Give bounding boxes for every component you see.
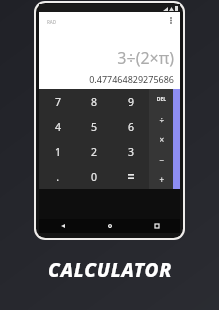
button[interactable]: Home [86, 219, 133, 233]
staticText: . [56, 170, 59, 184]
staticText: 2 [90, 145, 97, 159]
staticText: 6 [127, 120, 134, 134]
button[interactable]: 5 [75, 114, 112, 139]
staticText: 8 [90, 95, 97, 109]
button[interactable]: ÷ [149, 109, 173, 129]
staticText: 7 [54, 95, 61, 109]
staticText: 5 [90, 120, 97, 134]
staticText: 0.477464829275686 [89, 73, 174, 85]
staticText: − [159, 154, 164, 165]
button[interactable]: 1 [39, 139, 75, 164]
button[interactable]: 3 [112, 139, 149, 164]
button[interactable]: × [149, 129, 173, 149]
button[interactable]: 7 [39, 89, 75, 114]
staticText: ÷ [159, 114, 164, 125]
button[interactable]: + [149, 169, 173, 189]
staticText: CALCULATOR [48, 257, 172, 283]
button[interactable]: 6 [112, 114, 149, 139]
button[interactable]: DEL [149, 89, 173, 109]
staticText: RAD [46, 19, 56, 25]
button[interactable] [112, 164, 149, 189]
button[interactable]: 0 [75, 164, 112, 189]
button[interactable]: − [149, 149, 173, 169]
button[interactable]: . [39, 164, 75, 189]
staticText: DEL [156, 96, 166, 103]
staticText: 3÷(2×π) [117, 47, 174, 69]
staticText: + [159, 174, 164, 185]
button[interactable]: 8 [75, 89, 112, 114]
button[interactable]: Recents [133, 219, 180, 233]
staticText: 1 [54, 145, 61, 159]
staticText: 0 [90, 170, 97, 184]
staticText: × [159, 134, 164, 145]
staticText: 9 [127, 95, 134, 109]
button[interactable]: 2 [75, 139, 112, 164]
button[interactable]: More options [165, 15, 176, 26]
button[interactable]: 4 [39, 114, 75, 139]
button[interactable]: Back [39, 219, 86, 233]
button[interactable]: 9 [112, 89, 149, 114]
staticText: 3 [127, 145, 134, 159]
staticText: 4 [54, 120, 61, 134]
